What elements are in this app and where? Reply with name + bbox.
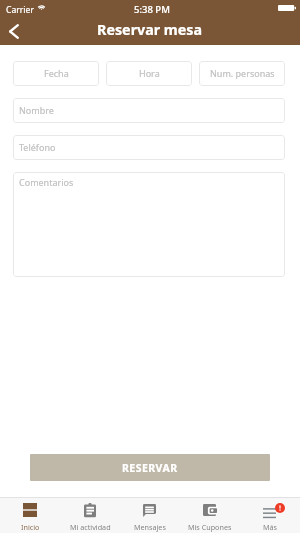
button[interactable]: Num. personas <box>199 61 285 86</box>
staticText: Fecha <box>44 67 69 79</box>
button[interactable]: Mis Cupones <box>180 497 240 533</box>
staticText: Inicio <box>21 522 40 532</box>
staticText: Comentarios <box>19 176 74 188</box>
button[interactable]: Nombre <box>13 98 285 123</box>
button[interactable]: Comentarios <box>13 172 285 277</box>
staticText: Más <box>263 522 277 532</box>
staticText: Mis Cupones <box>188 522 232 532</box>
button[interactable]: Inicio <box>0 497 60 533</box>
staticText: Mi actividad <box>70 522 111 532</box>
staticText: Nombre <box>19 104 54 116</box>
button[interactable]: Más <box>240 497 300 533</box>
button[interactable]: Mensajes <box>120 497 180 533</box>
staticText: Carrier <box>6 4 34 16</box>
button[interactable]: Mi actividad <box>60 497 120 533</box>
staticText: RESERVAR <box>122 461 178 475</box>
button[interactable]: Fecha <box>13 61 99 86</box>
staticText: Hora <box>139 67 160 79</box>
button[interactable]: Hora <box>106 61 192 86</box>
staticText: Teléfono <box>19 141 56 153</box>
button[interactable]: Teléfono <box>13 135 285 160</box>
staticText: Mensajes <box>134 522 166 532</box>
staticText: Reservar mesa <box>97 20 203 39</box>
staticText: 5:38 PM <box>134 3 170 16</box>
button[interactable]: RESERVAR <box>30 454 270 481</box>
button[interactable]: Back <box>0 20 30 45</box>
staticText: Num. personas <box>210 67 275 79</box>
